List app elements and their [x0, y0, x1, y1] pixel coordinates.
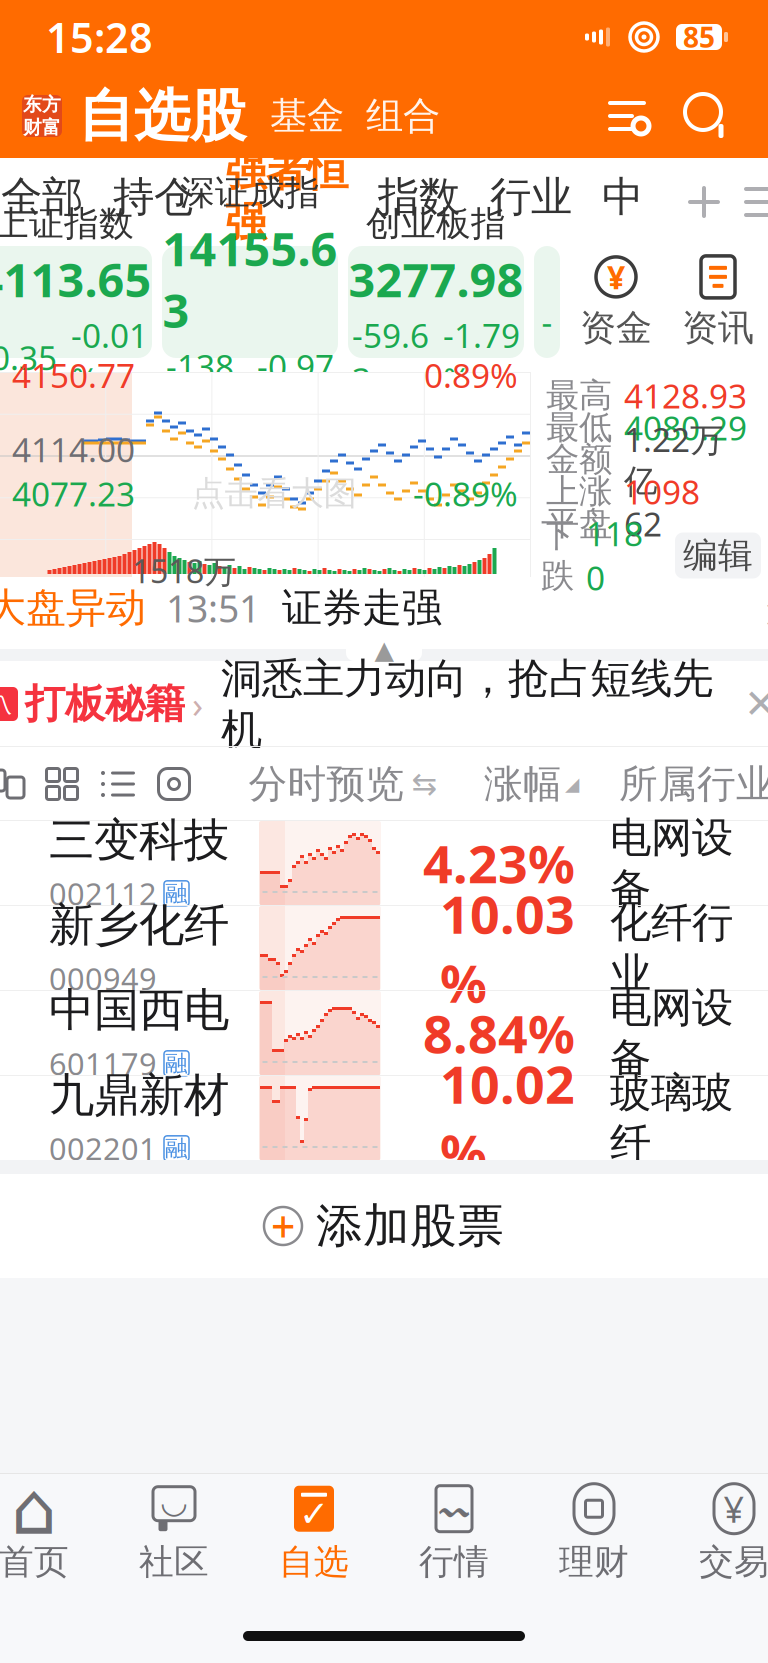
button[interactable]: 洞悉主力动向，抢占短线先机	[221, 653, 713, 755]
staticText: 证券走强	[282, 583, 442, 632]
staticText: 4080.29	[624, 405, 747, 450]
staticText: -1.79%	[443, 313, 520, 401]
staticText: 组合	[366, 93, 440, 139]
button[interactable]: 双列视图	[0, 756, 34, 812]
staticText: ✓	[299, 1493, 329, 1534]
button[interactable]: 所属行业	[619, 760, 768, 808]
staticText: 0.89%	[424, 353, 518, 397]
staticText: 002112	[49, 873, 157, 914]
staticText: 涨幅	[484, 760, 562, 808]
staticText: 15:28	[46, 10, 153, 64]
button[interactable]: 〽	[0, 679, 203, 728]
staticText: 〽	[0, 692, 13, 716]
staticText: 10.03%	[440, 879, 575, 1017]
button[interactable]: 行业	[475, 158, 587, 246]
button[interactable]: 添加分类	[676, 174, 732, 230]
button[interactable]: ¥	[574, 254, 658, 350]
button[interactable]: 组合	[366, 93, 440, 139]
staticText: ¥	[607, 256, 625, 298]
staticText: ◡	[160, 1483, 188, 1520]
staticText: 大盘异动	[0, 583, 146, 632]
staticText: 000949	[49, 958, 157, 999]
staticText: 融	[165, 879, 188, 907]
staticText: 上涨	[546, 471, 612, 512]
button[interactable]: 搜索	[682, 91, 732, 141]
staticText: 电网设备	[610, 812, 733, 914]
button[interactable]: 收起行情	[346, 639, 422, 661]
staticText: 所属行业	[619, 760, 768, 808]
staticText: ⌂	[11, 1468, 57, 1550]
button[interactable]: 资讯	[676, 254, 760, 350]
button[interactable]: 宫格视图	[34, 756, 90, 812]
staticText: 编辑	[683, 534, 753, 577]
staticText: 14155.63	[162, 217, 337, 341]
staticText: 最高	[546, 375, 612, 416]
staticText: -59.63	[352, 313, 429, 401]
staticText: 中	[602, 172, 643, 222]
button[interactable]: 中	[587, 158, 658, 246]
staticText: 理财	[559, 1541, 629, 1583]
button[interactable]: ⌂	[0, 1474, 104, 1592]
button[interactable]: 创业板指	[348, 246, 524, 358]
button[interactable]: 新乡化纤	[23, 906, 745, 990]
button[interactable]: 排序设置	[602, 93, 652, 139]
button[interactable]: 三变科技	[23, 821, 745, 905]
staticText: 中国西电	[49, 982, 229, 1038]
button[interactable]: ◡	[104, 1474, 244, 1592]
staticText: 点击看大图	[191, 473, 356, 514]
button[interactable]: 自定义视图	[146, 756, 202, 812]
staticText: 62	[624, 501, 662, 546]
button[interactable]: 关闭广告	[732, 675, 768, 733]
button[interactable]: 自选股	[78, 82, 246, 150]
staticText: 全部	[1, 172, 83, 222]
staticText: 融	[165, 1134, 188, 1162]
staticText: 分时预览	[248, 760, 404, 808]
staticText: 深证成指	[180, 171, 320, 214]
button[interactable]: 理财	[524, 1474, 664, 1592]
button[interactable]: 强者恒强	[210, 158, 363, 246]
staticText: 002201	[49, 1128, 157, 1169]
button[interactable]: 大盘异动	[0, 577, 768, 639]
staticText: ›	[765, 573, 768, 643]
staticText: 平盘	[546, 503, 612, 544]
staticText: 创业板指	[366, 202, 506, 245]
staticText: -0.01%	[71, 313, 148, 401]
staticText: 洞悉主力动向，抢占短线先机	[221, 653, 713, 755]
button[interactable]: 涨幅	[484, 760, 579, 808]
staticText: 电网设备	[610, 982, 733, 1084]
staticText: 三变科技	[49, 812, 229, 868]
staticText: 〰	[439, 1488, 468, 1529]
staticText: 添加股票	[316, 1197, 504, 1255]
staticText: 玻璃玻纤	[610, 1067, 733, 1169]
staticText: ⇆	[411, 767, 437, 801]
button[interactable]: 中国西电	[23, 991, 745, 1075]
button[interactable]: 基金	[270, 93, 344, 139]
staticText: -0.35	[0, 335, 57, 379]
button[interactable]: 全部	[0, 158, 98, 246]
button[interactable]: 分时预览	[248, 760, 437, 808]
button[interactable]: 管理分类	[732, 174, 768, 230]
staticText: 85	[683, 18, 715, 56]
button[interactable]: 深证成指	[162, 246, 338, 358]
button[interactable]: 〰	[384, 1474, 524, 1592]
staticText: 4113.65	[0, 248, 151, 310]
staticText: 4150.77	[12, 353, 135, 397]
button[interactable]: 编辑	[675, 532, 761, 578]
staticText: 强者恒强	[225, 146, 348, 248]
button[interactable]: 指数	[363, 158, 475, 246]
staticText: 新乡化纤	[49, 897, 229, 953]
button[interactable]: 上证指数	[0, 246, 152, 358]
button[interactable]: 九鼎新材	[23, 1076, 745, 1160]
button[interactable]: +	[0, 1174, 768, 1278]
button[interactable]: 上证指数分时图	[0, 372, 530, 577]
staticText: 融	[165, 1049, 188, 1077]
staticText: 4077.23	[12, 471, 135, 516]
button[interactable]: ¥	[664, 1474, 768, 1592]
staticText: 4.23%	[423, 828, 575, 898]
button[interactable]: 持仓	[98, 158, 210, 246]
button[interactable]: ✓	[244, 1474, 384, 1592]
staticText: 资金	[580, 306, 652, 350]
button[interactable]: 列表视图	[90, 756, 146, 812]
staticText: 首页	[0, 1541, 69, 1583]
staticText: 1180	[586, 511, 643, 600]
